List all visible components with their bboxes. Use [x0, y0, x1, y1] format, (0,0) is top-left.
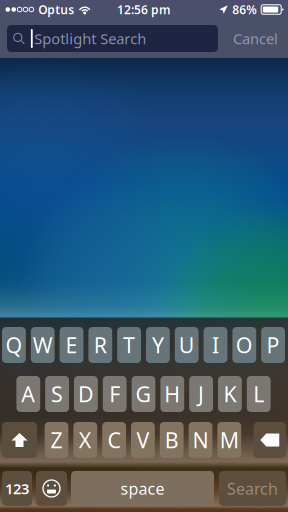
button[interactable]: G: [132, 376, 155, 412]
button[interactable]: space: [71, 471, 214, 506]
staticText: Spotlight Search: [34, 29, 146, 48]
staticText: F: [109, 380, 120, 408]
button[interactable]: Z: [45, 422, 68, 458]
staticText: P: [267, 331, 280, 359]
staticText: Q: [5, 331, 22, 359]
button[interactable]: E: [60, 327, 83, 363]
staticText: 86%: [232, 1, 257, 17]
button[interactable]: T: [117, 327, 141, 363]
button[interactable]: F: [103, 376, 127, 412]
button[interactable]: C: [102, 422, 126, 458]
button[interactable]: Cancel: [225, 25, 286, 52]
staticText: B: [165, 426, 179, 454]
staticText: G: [135, 380, 151, 408]
button[interactable]: A: [16, 376, 40, 412]
button[interactable]: P: [261, 327, 285, 363]
button[interactable]: U: [175, 327, 199, 363]
staticText: X: [79, 426, 92, 454]
button[interactable]: X: [73, 422, 97, 458]
staticText: N: [192, 426, 208, 454]
staticText: R: [94, 331, 107, 359]
button[interactable]: Spotlight Search: [7, 25, 218, 52]
staticText: Y: [152, 331, 164, 359]
button[interactable]: D: [74, 376, 98, 412]
staticText: Search: [227, 478, 278, 499]
staticText: Cancel: [233, 29, 278, 48]
staticText: U: [179, 331, 195, 359]
button[interactable]: K: [218, 376, 242, 412]
staticText: 12:56 pm: [117, 1, 171, 17]
button[interactable]: M: [217, 422, 241, 458]
staticText: 123: [5, 479, 29, 498]
staticText: D: [78, 380, 94, 408]
staticText: V: [136, 426, 149, 454]
staticText: H: [164, 380, 180, 408]
staticText: Optus: [38, 1, 74, 17]
staticText: T: [123, 331, 135, 359]
button[interactable]: W: [31, 327, 55, 363]
button[interactable]: B: [160, 422, 184, 458]
staticText: J: [198, 380, 204, 408]
button[interactable]: H: [160, 376, 184, 412]
staticText: S: [51, 380, 63, 408]
button[interactable]: Y: [146, 327, 170, 363]
button[interactable]: J: [189, 376, 213, 412]
button[interactable]: Delete: [253, 422, 286, 458]
staticText: M: [220, 426, 239, 454]
staticText: I: [212, 331, 219, 359]
button[interactable]: O: [232, 327, 256, 363]
button[interactable]: Q: [2, 327, 26, 363]
button[interactable]: V: [131, 422, 155, 458]
staticText: A: [21, 380, 35, 408]
staticText: W: [33, 331, 53, 359]
button[interactable]: 123: [2, 471, 32, 506]
button[interactable]: I: [204, 327, 227, 363]
button[interactable]: Shift: [2, 422, 37, 458]
button[interactable]: R: [88, 327, 112, 363]
staticText: Z: [50, 426, 62, 454]
staticText: K: [223, 380, 236, 408]
button[interactable]: S: [45, 376, 69, 412]
staticText: C: [108, 426, 121, 454]
staticText: O: [236, 331, 253, 359]
staticText: space: [120, 478, 164, 499]
button[interactable]: L: [247, 376, 271, 412]
staticText: E: [65, 331, 77, 359]
button[interactable]: Search: [219, 471, 286, 506]
button[interactable]: Emoji: [36, 471, 67, 506]
button[interactable]: N: [189, 422, 212, 458]
staticText: L: [253, 380, 264, 408]
